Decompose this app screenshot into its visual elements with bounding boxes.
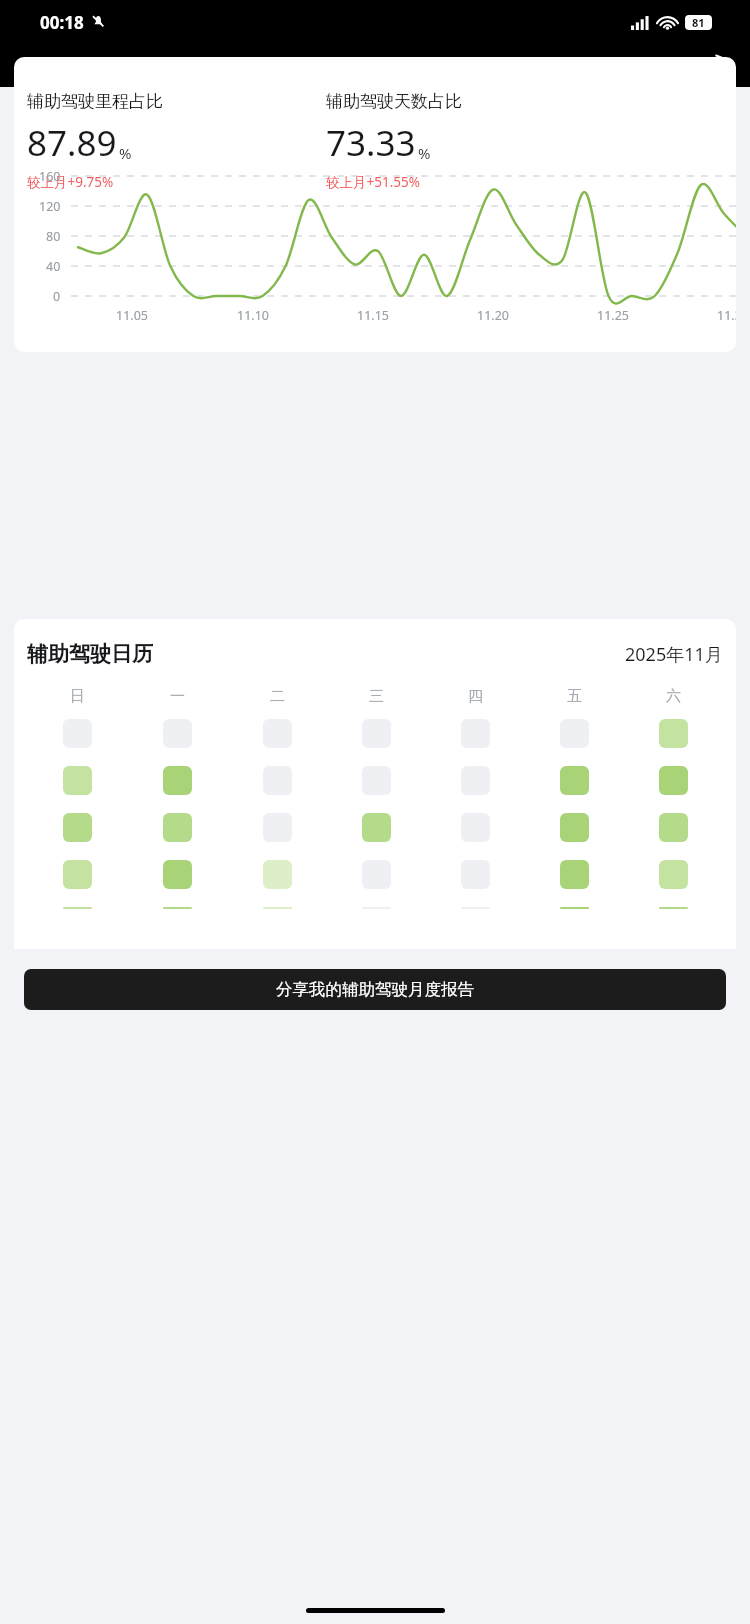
- staticText: 分享我的辅助驾驶月度报告: [276, 979, 474, 1000]
- staticText: 辅助驾驶天数占比: [326, 91, 462, 112]
- staticText: 80: [46, 228, 61, 245]
- button[interactable]: [63, 860, 92, 889]
- button[interactable]: [659, 813, 688, 842]
- button[interactable]: [263, 860, 292, 889]
- button[interactable]: [659, 766, 688, 795]
- staticText: 160: [39, 168, 61, 185]
- button[interactable]: [163, 860, 192, 889]
- staticText: 11.30: [717, 307, 736, 324]
- staticText: 较上月+51.55%: [326, 173, 420, 191]
- button[interactable]: [659, 907, 688, 909]
- button[interactable]: Back: [16, 46, 56, 86]
- staticText: 0: [53, 288, 61, 305]
- staticText: 辅助驾驶里程占比: [27, 91, 163, 112]
- staticText: 11.25: [597, 307, 629, 324]
- staticText: 11.10: [237, 307, 269, 324]
- staticText: 一: [170, 687, 185, 706]
- staticText: 五: [567, 687, 582, 706]
- button[interactable]: [362, 813, 391, 842]
- staticText: %: [418, 143, 431, 163]
- button[interactable]: [560, 860, 589, 889]
- staticText: 120: [39, 198, 61, 215]
- button[interactable]: [659, 719, 688, 748]
- button[interactable]: [163, 907, 192, 909]
- staticText: 87.89: [27, 119, 117, 167]
- staticText: 日: [70, 687, 85, 706]
- staticText: 四: [468, 687, 483, 706]
- button[interactable]: [63, 766, 92, 795]
- staticText: 11.15: [357, 307, 389, 324]
- button[interactable]: [560, 813, 589, 842]
- button[interactable]: [659, 860, 688, 889]
- staticText: 三: [369, 687, 384, 706]
- button[interactable]: [63, 813, 92, 842]
- staticText: 40: [46, 258, 61, 275]
- staticText: 11.05: [116, 307, 148, 324]
- staticText: 00:18: [40, 11, 84, 34]
- button[interactable]: [560, 907, 589, 909]
- staticText: 辅助驾驶日历: [27, 641, 153, 667]
- button[interactable]: Share: [692, 46, 732, 86]
- staticText: %: [119, 143, 132, 163]
- staticText: 73.33: [326, 119, 416, 167]
- button[interactable]: [63, 907, 92, 909]
- staticText: 2025年11月: [625, 642, 723, 667]
- button[interactable]: 分享我的辅助驾驶月度报告: [24, 969, 726, 1010]
- staticText: 81: [692, 15, 705, 30]
- staticText: 六: [666, 687, 681, 706]
- button[interactable]: [163, 766, 192, 795]
- staticText: 较上月+9.75%: [27, 173, 114, 191]
- button[interactable]: [163, 813, 192, 842]
- staticText: 11.20: [477, 307, 509, 324]
- button[interactable]: [263, 907, 292, 909]
- button[interactable]: [560, 766, 589, 795]
- staticText: 二: [270, 687, 285, 706]
